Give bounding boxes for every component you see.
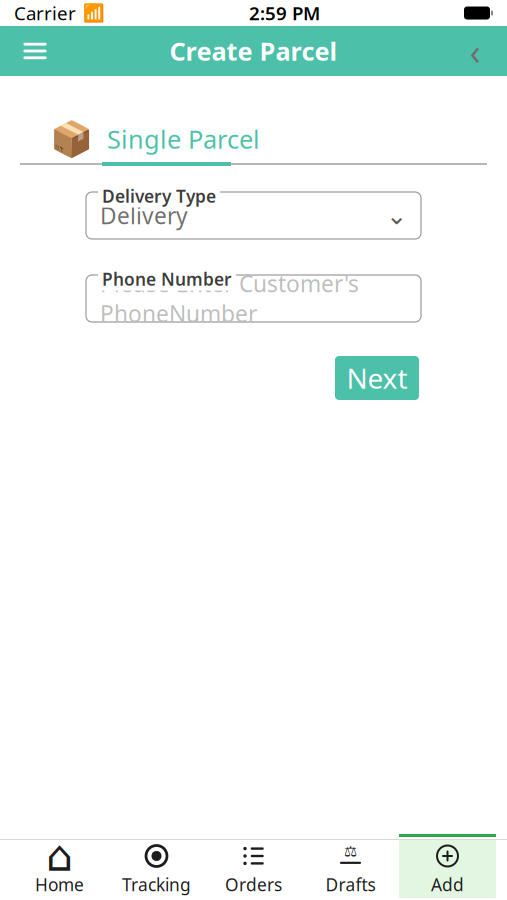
staticText: Single Parcel [107, 122, 260, 156]
staticText: 📶 [83, 3, 105, 23]
button[interactable]: Menu [8, 26, 62, 76]
button[interactable]: Back [451, 26, 499, 76]
button[interactable]: Delivery [86, 192, 421, 239]
staticText: ⚖ [344, 843, 357, 860]
button[interactable]: Orders [205, 840, 302, 898]
staticText: Delivery [100, 200, 188, 230]
staticText: ‹ [469, 27, 480, 75]
staticText: Delivery Type [102, 184, 216, 207]
button[interactable]: ⌂ [11, 840, 108, 898]
staticText: Home [35, 873, 84, 896]
staticText: Orders [225, 873, 282, 896]
button[interactable]: Tracking [108, 840, 205, 898]
staticText: Next [346, 359, 407, 397]
staticText: Drafts [325, 873, 375, 896]
staticText: 2:59 PM [249, 1, 320, 25]
button[interactable]: Please Enter Customer's PhoneNumber [86, 275, 421, 322]
staticText: 📦 [50, 119, 93, 159]
staticText: ⌂ [46, 832, 73, 880]
button[interactable]: 📦 [44, 116, 266, 162]
button[interactable]: ⚖ [302, 840, 399, 898]
button[interactable]: Add [399, 840, 496, 898]
staticText: Create Parcel [169, 34, 337, 68]
staticText: Tracking [122, 873, 191, 896]
staticText: Add [431, 873, 464, 896]
staticText: ⌄ [386, 201, 407, 230]
staticText: Carrier [14, 1, 76, 25]
staticText: Please Enter Customer's PhoneNumber [100, 268, 359, 329]
staticText: Phone Number [102, 267, 232, 290]
button[interactable]: Next [335, 356, 419, 400]
